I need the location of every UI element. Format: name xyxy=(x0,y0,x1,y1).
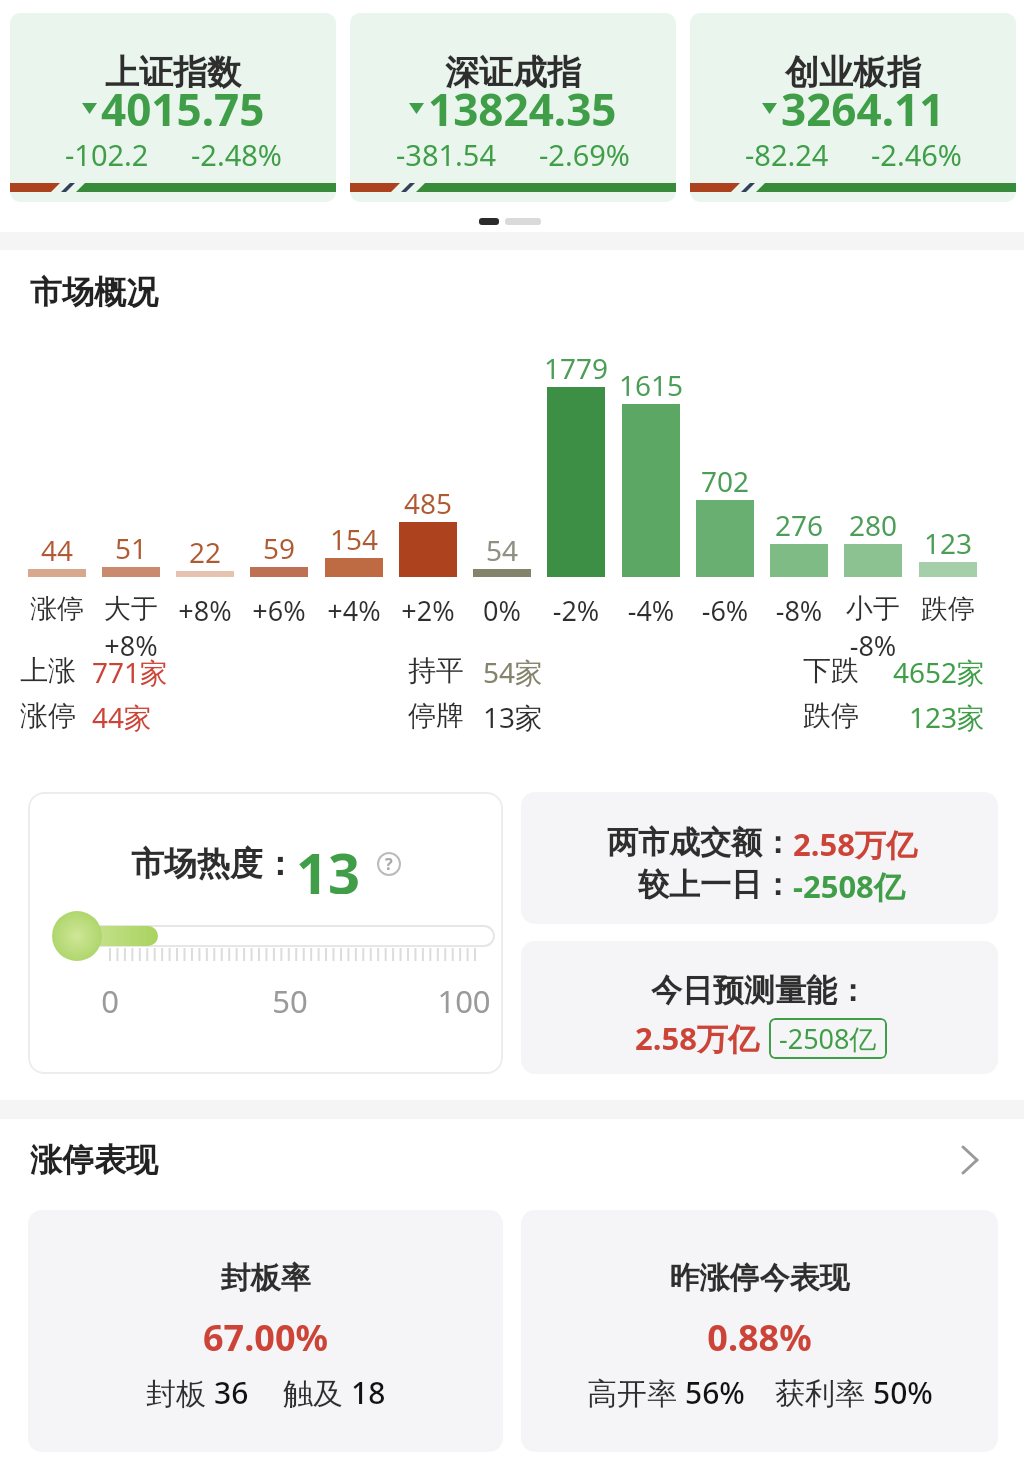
button[interactable]: 上证指数 xyxy=(10,13,336,202)
staticText: 36 xyxy=(214,1372,249,1413)
staticText: 涨停 xyxy=(0,592,117,626)
button[interactable]: 市场热度： xyxy=(28,792,503,1074)
staticText: 跌停 xyxy=(803,698,859,733)
staticText: +4% xyxy=(294,592,414,629)
staticText: 2.58万亿 xyxy=(635,1017,759,1059)
staticText: 较上一日： xyxy=(638,865,793,904)
staticText: 56% xyxy=(685,1372,745,1413)
staticText: +8% xyxy=(145,592,265,629)
staticText: -82.24 xyxy=(745,135,829,174)
staticText: -4% xyxy=(591,592,711,629)
button[interactable]: 深证成指 xyxy=(350,13,676,202)
button[interactable]: 创业板指 xyxy=(690,13,1016,202)
staticText: 0.88% xyxy=(521,1313,998,1362)
staticText: 13家 xyxy=(483,698,544,736)
staticText: 123家 xyxy=(785,698,985,736)
button[interactable]: 两市成交额： xyxy=(521,792,998,924)
staticText: 1779 xyxy=(516,349,636,387)
staticText: 3264.11 xyxy=(781,79,945,137)
staticText: 13 xyxy=(296,834,361,894)
staticText: -2508亿 xyxy=(779,1020,877,1057)
staticText: -8% xyxy=(739,592,859,629)
staticText: 702 xyxy=(665,462,785,500)
button[interactable]: 今日预测量能： xyxy=(521,941,998,1074)
staticText: 大于 +8% xyxy=(71,592,191,664)
staticText: 1615 xyxy=(591,366,711,404)
staticText: 昨涨停今表现 xyxy=(521,1259,998,1297)
staticText: 两市成交额： xyxy=(607,823,793,862)
staticText: 市场概况 xyxy=(30,272,158,312)
button[interactable]: 封板率 xyxy=(28,1210,503,1452)
staticText: 封板率 xyxy=(28,1259,503,1297)
staticText: 154 xyxy=(294,520,414,558)
staticText: 485 xyxy=(368,484,488,522)
staticText: 100 xyxy=(424,980,503,1022)
staticText: 涨停表现 xyxy=(30,1140,158,1180)
staticText: 123 xyxy=(888,524,1008,562)
staticText: 67.00% xyxy=(28,1313,503,1362)
staticText: 小于 -8% xyxy=(813,592,933,664)
staticText: -381.54 xyxy=(396,135,497,174)
staticText: 2.58万亿 xyxy=(793,823,917,865)
staticText: 跌停 xyxy=(888,592,1008,626)
staticText: 上证指数 xyxy=(105,51,241,94)
staticText: -2.48% xyxy=(191,135,282,174)
staticText: 4652家 xyxy=(785,653,985,691)
staticText: 18 xyxy=(351,1372,386,1413)
staticText: 44家 xyxy=(92,698,153,736)
staticText: 创业板指 xyxy=(785,51,921,94)
staticText: 上涨 xyxy=(20,653,76,688)
staticText: 获利率 xyxy=(775,1372,873,1413)
staticText: 涨停 xyxy=(20,698,76,733)
staticText: -2% xyxy=(516,592,636,629)
staticText: 停牌 xyxy=(408,698,464,733)
staticText: -102.2 xyxy=(65,135,149,174)
staticText: 50% xyxy=(873,1372,933,1413)
staticText: 4015.75 xyxy=(101,79,265,137)
staticText: -2508亿 xyxy=(793,865,905,907)
staticText: 22 xyxy=(145,533,265,571)
staticText: 今日预测量能： xyxy=(521,971,998,1010)
staticText: 深证成指 xyxy=(445,51,581,94)
staticText: 0 xyxy=(90,980,130,1022)
staticText: +6% xyxy=(219,592,339,629)
staticText: 市场热度： xyxy=(131,843,296,885)
staticText: 771家 xyxy=(92,653,169,691)
staticText: 下跌 xyxy=(803,653,859,688)
staticText: 276 xyxy=(739,506,859,544)
staticText: -2.69% xyxy=(539,135,630,174)
staticText: 280 xyxy=(813,506,933,544)
staticText: 触及 xyxy=(283,1372,351,1413)
staticText: 51 xyxy=(71,529,191,567)
staticText: +2% xyxy=(368,592,488,629)
staticText: 54家 xyxy=(483,653,544,691)
staticText: 59 xyxy=(219,529,339,567)
staticText: 封板 xyxy=(146,1372,214,1413)
staticText: 0% xyxy=(442,592,562,629)
staticText: 44 xyxy=(0,531,117,569)
button[interactable]: 昨涨停今表现 xyxy=(521,1210,998,1452)
staticText: ? xyxy=(385,853,393,875)
staticText: -6% xyxy=(665,592,785,629)
staticText: 持平 xyxy=(408,653,464,688)
staticText: -2.46% xyxy=(871,135,962,174)
staticText: 高开率 xyxy=(587,1372,685,1413)
staticText: 50 xyxy=(260,980,320,1022)
staticText: 13824.35 xyxy=(428,79,617,137)
staticText: 54 xyxy=(442,531,562,569)
